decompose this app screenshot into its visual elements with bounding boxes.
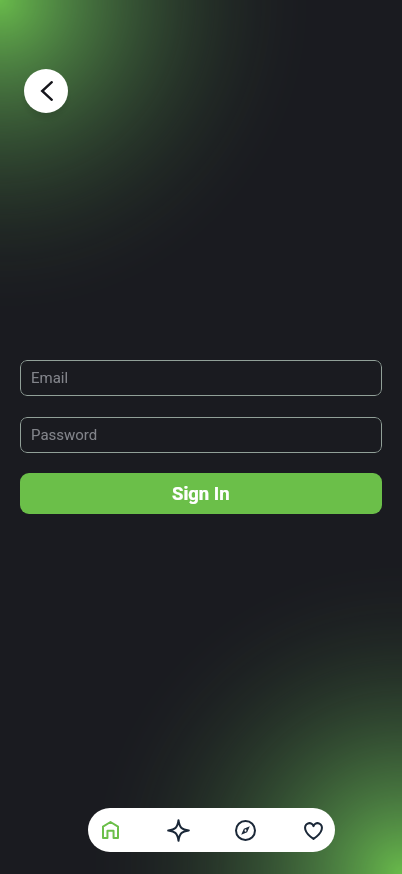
button[interactable]: Discover — [223, 808, 267, 852]
button[interactable]: Back — [24, 69, 68, 113]
staticText: Password — [31, 426, 98, 444]
button[interactable]: Home — [88, 808, 132, 852]
button[interactable]: Password — [20, 417, 382, 453]
button[interactable]: Favorites — [291, 808, 335, 852]
button[interactable]: Email — [20, 360, 382, 396]
button[interactable]: Explore — [156, 808, 200, 852]
staticText: Sign In — [172, 483, 230, 505]
button[interactable]: Sign In — [20, 473, 382, 514]
staticText: Email — [31, 369, 69, 387]
